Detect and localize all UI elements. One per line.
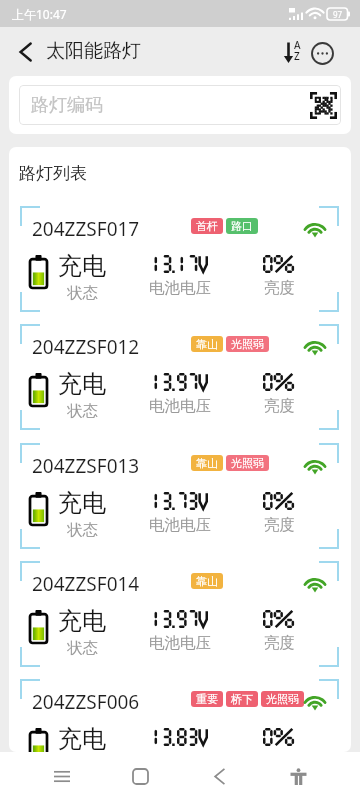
staticText: Z <box>294 49 300 63</box>
staticText: 重要 <box>196 692 218 706</box>
button[interactable]: Home <box>101 752 180 800</box>
staticText: 靠山 <box>196 574 218 588</box>
button[interactable]: 204ZZSF013 <box>20 443 339 549</box>
staticText: 97 <box>333 9 343 20</box>
staticText: 亮度 <box>264 633 295 653</box>
staticText: 上午10:47 <box>12 6 67 22</box>
button[interactable]: Recents <box>22 752 101 800</box>
staticText: 首杆 <box>196 219 218 233</box>
staticText: 亮度 <box>264 396 295 416</box>
staticText: 亮度 <box>264 515 295 535</box>
staticText: 靠山 <box>196 337 218 351</box>
staticText: 桥下 <box>231 692 253 706</box>
staticText: 204ZZSF012 <box>32 334 140 360</box>
staticText: 路灯编码 <box>31 94 103 117</box>
button[interactable]: 204ZZSF014 <box>20 561 339 667</box>
staticText: 亮度 <box>264 278 295 298</box>
staticText: 电池电压 <box>149 633 211 653</box>
staticText: 204ZZSF013 <box>32 453 140 479</box>
staticText: 靠山 <box>196 456 218 470</box>
staticText: 太阳能路灯 <box>46 39 141 63</box>
button[interactable]: 路灯编码 <box>19 85 341 125</box>
staticText: 路口 <box>231 219 253 233</box>
button[interactable]: More options <box>310 41 335 66</box>
button[interactable]: 204ZZSF012 <box>20 324 339 430</box>
staticText: 状态 <box>67 401 98 421</box>
button[interactable]: 204ZZSF006 <box>20 679 339 752</box>
staticText: 204ZZSF017 <box>32 216 140 242</box>
staticText: 光照弱 <box>266 692 299 706</box>
staticText: 204ZZSF014 <box>32 571 140 597</box>
button[interactable]: Accessibility <box>259 752 338 800</box>
staticText: 状态 <box>67 520 98 540</box>
button[interactable]: Back <box>180 752 259 800</box>
staticText: 电池电压 <box>149 396 211 416</box>
staticText: A <box>294 38 301 52</box>
staticText: 光照弱 <box>231 456 264 470</box>
staticText: 状态 <box>67 283 98 303</box>
button[interactable]: 204ZZSF017 <box>20 206 339 312</box>
staticText: 充电 <box>58 369 106 399</box>
button[interactable]: Back <box>12 38 39 65</box>
button[interactable]: Sort A to Z <box>280 38 308 66</box>
button[interactable]: Scan QR code <box>310 92 337 119</box>
staticText: 充电 <box>58 251 106 281</box>
staticText: 充电 <box>58 724 106 752</box>
staticText: 光照弱 <box>231 337 264 351</box>
staticText: 204ZZSF006 <box>32 689 140 715</box>
staticText: 路灯列表 <box>19 163 87 184</box>
staticText: 充电 <box>58 606 106 636</box>
staticText: 状态 <box>67 638 98 658</box>
staticText: 电池电压 <box>149 515 211 535</box>
staticText: 电池电压 <box>149 278 211 298</box>
staticText: 充电 <box>58 488 106 518</box>
